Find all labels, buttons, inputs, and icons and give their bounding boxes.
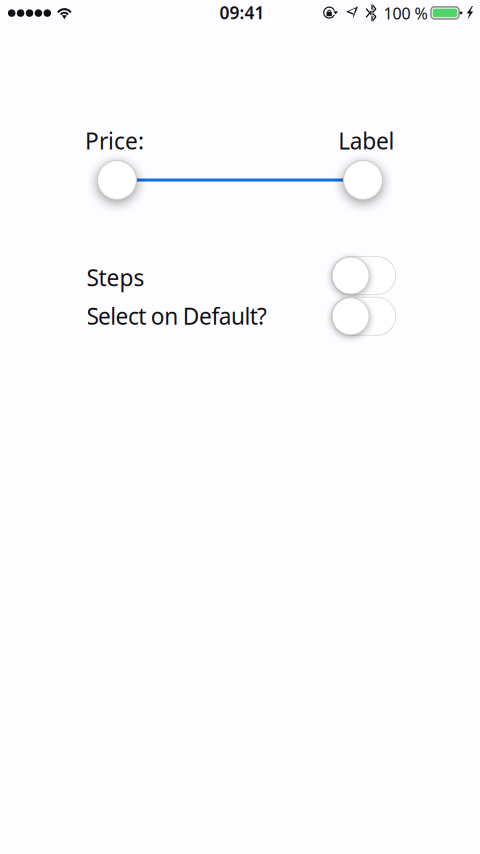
staticText: Steps bbox=[87, 262, 145, 292]
button[interactable]: Minimum price bbox=[97, 160, 136, 199]
staticText: Price: bbox=[85, 126, 144, 156]
staticText: 09:41 bbox=[219, 1, 264, 24]
staticText: Select on Default? bbox=[87, 301, 267, 331]
staticText: 100 % bbox=[383, 3, 427, 24]
button[interactable]: Steps bbox=[332, 257, 396, 295]
button[interactable]: Select on Default? bbox=[332, 297, 396, 335]
staticText: Label bbox=[338, 126, 394, 156]
button[interactable]: Maximum price bbox=[343, 160, 382, 199]
